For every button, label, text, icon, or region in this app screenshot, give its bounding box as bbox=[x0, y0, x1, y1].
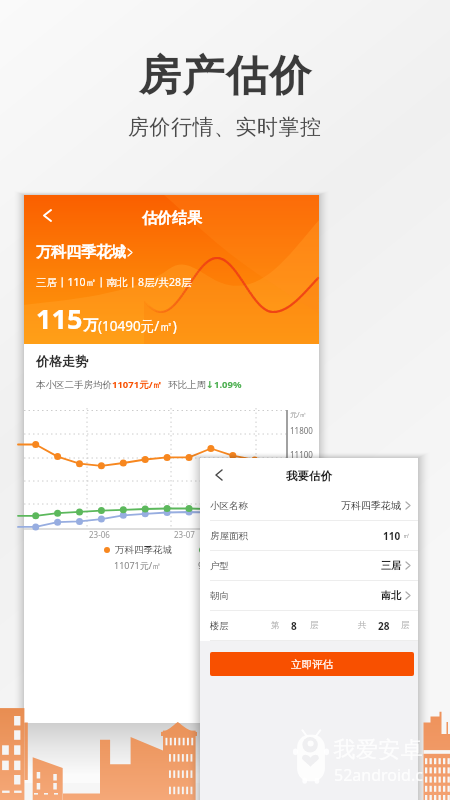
staticText: 我爱安卓 bbox=[333, 736, 423, 764]
button[interactable]: 朝向 bbox=[200, 581, 418, 610]
staticText: 层 bbox=[310, 620, 319, 631]
staticText: 万科四季花城 bbox=[115, 544, 172, 556]
staticText: (10490元/㎡) bbox=[98, 317, 177, 335]
button[interactable]: 万科四季花城 bbox=[32, 241, 136, 264]
staticText: 房屋面积 bbox=[210, 530, 248, 542]
button[interactable]: Back bbox=[32, 200, 62, 230]
staticText: 立即评估 bbox=[291, 658, 333, 671]
staticText: 万 bbox=[83, 316, 98, 335]
staticText: 房产估价 bbox=[138, 50, 312, 103]
staticText: 115 bbox=[36, 300, 83, 337]
button[interactable]: 房屋面积 bbox=[200, 521, 418, 550]
staticText: 本小区二手房均价 bbox=[36, 379, 112, 391]
button[interactable]: 楼层 bbox=[200, 611, 418, 640]
staticText: 于洪区 bbox=[210, 544, 239, 556]
staticText: 110 bbox=[383, 529, 401, 543]
staticText: 52android.com bbox=[334, 764, 448, 786]
staticText: 11800 bbox=[290, 425, 313, 436]
staticText: 23-07 bbox=[174, 529, 195, 540]
staticText: 23-06 bbox=[89, 529, 110, 540]
staticText: 8 bbox=[291, 619, 297, 633]
staticText: 11100 bbox=[290, 449, 313, 460]
staticText: 价格走势 bbox=[36, 353, 88, 369]
staticText: 第 bbox=[271, 620, 280, 631]
button[interactable]: 户型 bbox=[200, 551, 418, 580]
staticText: ↓1.09% bbox=[206, 378, 242, 391]
staticText: 9464元/㎡ bbox=[198, 559, 240, 571]
staticText: 28 bbox=[378, 619, 390, 633]
button[interactable]: 小区名称 bbox=[200, 491, 418, 520]
staticText: 万科四季花城 bbox=[36, 243, 126, 262]
staticText: ㎡ bbox=[403, 531, 410, 540]
staticText: 楼层 bbox=[210, 620, 229, 632]
staticText: 三居 bbox=[381, 559, 401, 572]
staticText: 朝向 bbox=[210, 590, 229, 602]
staticText: 我要估价 bbox=[286, 469, 332, 483]
staticText: 11071元/㎡ bbox=[114, 559, 162, 571]
staticText: 共 bbox=[358, 620, 367, 631]
staticText: 万科四季花城 bbox=[341, 499, 401, 512]
staticText: 三居丨110㎡丨南北丨8层/共28层 bbox=[36, 275, 192, 289]
staticText: 房价行情、实时掌控 bbox=[128, 114, 322, 140]
staticText: 11071元/㎡ bbox=[112, 378, 163, 391]
button[interactable]: 立即评估 bbox=[210, 652, 414, 676]
staticText: 估价结果 bbox=[142, 209, 202, 228]
button[interactable]: Back bbox=[206, 462, 232, 488]
staticText: 环比上周 bbox=[168, 379, 206, 391]
staticText: 南北 bbox=[381, 589, 401, 602]
staticText: 户型 bbox=[210, 560, 229, 572]
staticText: 层 bbox=[401, 620, 410, 631]
staticText: 小区名称 bbox=[210, 500, 248, 512]
staticText: 元/㎡ bbox=[290, 410, 307, 420]
